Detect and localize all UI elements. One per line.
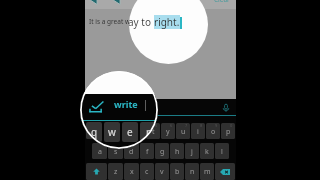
button[interactable]: s (108, 143, 123, 159)
button[interactable]: a (92, 143, 107, 159)
staticText: write (114, 98, 138, 110)
staticText: ay to (129, 15, 154, 29)
button[interactable]: b (170, 163, 184, 180)
staticText: y (166, 127, 170, 137)
button[interactable]: It is a great way to (85, 9, 236, 99)
staticText: 6 (170, 123, 173, 128)
staticText: h (175, 147, 180, 157)
staticText: 7 (185, 123, 188, 128)
staticText: 8 (200, 123, 203, 128)
button[interactable]: Redo (110, 0, 124, 9)
staticText: k (205, 147, 209, 157)
staticText: v (160, 167, 164, 177)
button[interactable]: 0 (221, 123, 235, 139)
button[interactable]: Undo (87, 0, 101, 9)
button[interactable]: 1 (86, 123, 100, 139)
staticText: 5 (155, 123, 158, 128)
button[interactable]: Voice input (219, 101, 232, 114)
button[interactable]: m (200, 163, 214, 180)
staticText: o (211, 127, 216, 137)
staticText: It is a great way to (89, 17, 147, 26)
staticText: r (137, 127, 140, 137)
button[interactable]: 5 (146, 123, 160, 139)
staticText: right. (154, 15, 180, 29)
staticText: right. (147, 17, 164, 26)
staticText: e (127, 125, 133, 139)
staticText: b (175, 167, 180, 177)
staticText: i (197, 127, 199, 137)
button[interactable]: 7 (176, 123, 190, 139)
button[interactable]: f (140, 143, 154, 159)
staticText: l (221, 147, 223, 157)
button[interactable]: 4 (131, 123, 145, 139)
button[interactable]: n (185, 163, 199, 180)
button[interactable]: v (155, 163, 169, 180)
button[interactable]: 6 (161, 123, 175, 139)
staticText: q (91, 125, 98, 139)
staticText: Clear (214, 0, 230, 4)
staticText: r (146, 125, 151, 139)
staticText: g (160, 147, 165, 157)
button[interactable]: k (200, 143, 214, 159)
staticText: d (129, 147, 134, 157)
staticText: f (146, 147, 149, 157)
staticText: j (191, 147, 193, 157)
staticText: u (181, 127, 186, 137)
button[interactable]: Clear (208, 0, 236, 4)
staticText: z (114, 167, 118, 177)
staticText: 0 (230, 123, 233, 128)
button[interactable]: 9 (206, 123, 220, 139)
button[interactable]: d (124, 143, 139, 159)
button[interactable]: h (170, 143, 184, 159)
staticText: 9 (215, 123, 218, 128)
staticText: e (121, 127, 125, 137)
button[interactable]: c (140, 163, 154, 180)
staticText: w (105, 127, 111, 137)
button[interactable]: 8 (191, 123, 205, 139)
button[interactable]: z (108, 163, 123, 180)
button[interactable]: j (185, 143, 199, 159)
staticText: x (130, 167, 134, 177)
button[interactable]: l (215, 143, 229, 159)
staticText: a (98, 147, 102, 157)
button[interactable]: x (124, 163, 139, 180)
staticText: c (145, 167, 149, 177)
staticText: s (114, 147, 118, 157)
staticText: p (226, 127, 231, 137)
button[interactable]: Shift (86, 163, 107, 180)
button[interactable]: g (155, 143, 169, 159)
button[interactable]: 3 (116, 123, 130, 139)
staticText: t (152, 127, 155, 137)
staticText: m (204, 167, 211, 177)
staticText: w (108, 125, 116, 139)
button[interactable]: 2 (101, 123, 115, 139)
staticText: q (91, 127, 96, 137)
button[interactable]: Backspace (215, 163, 235, 180)
staticText: n (190, 167, 195, 177)
